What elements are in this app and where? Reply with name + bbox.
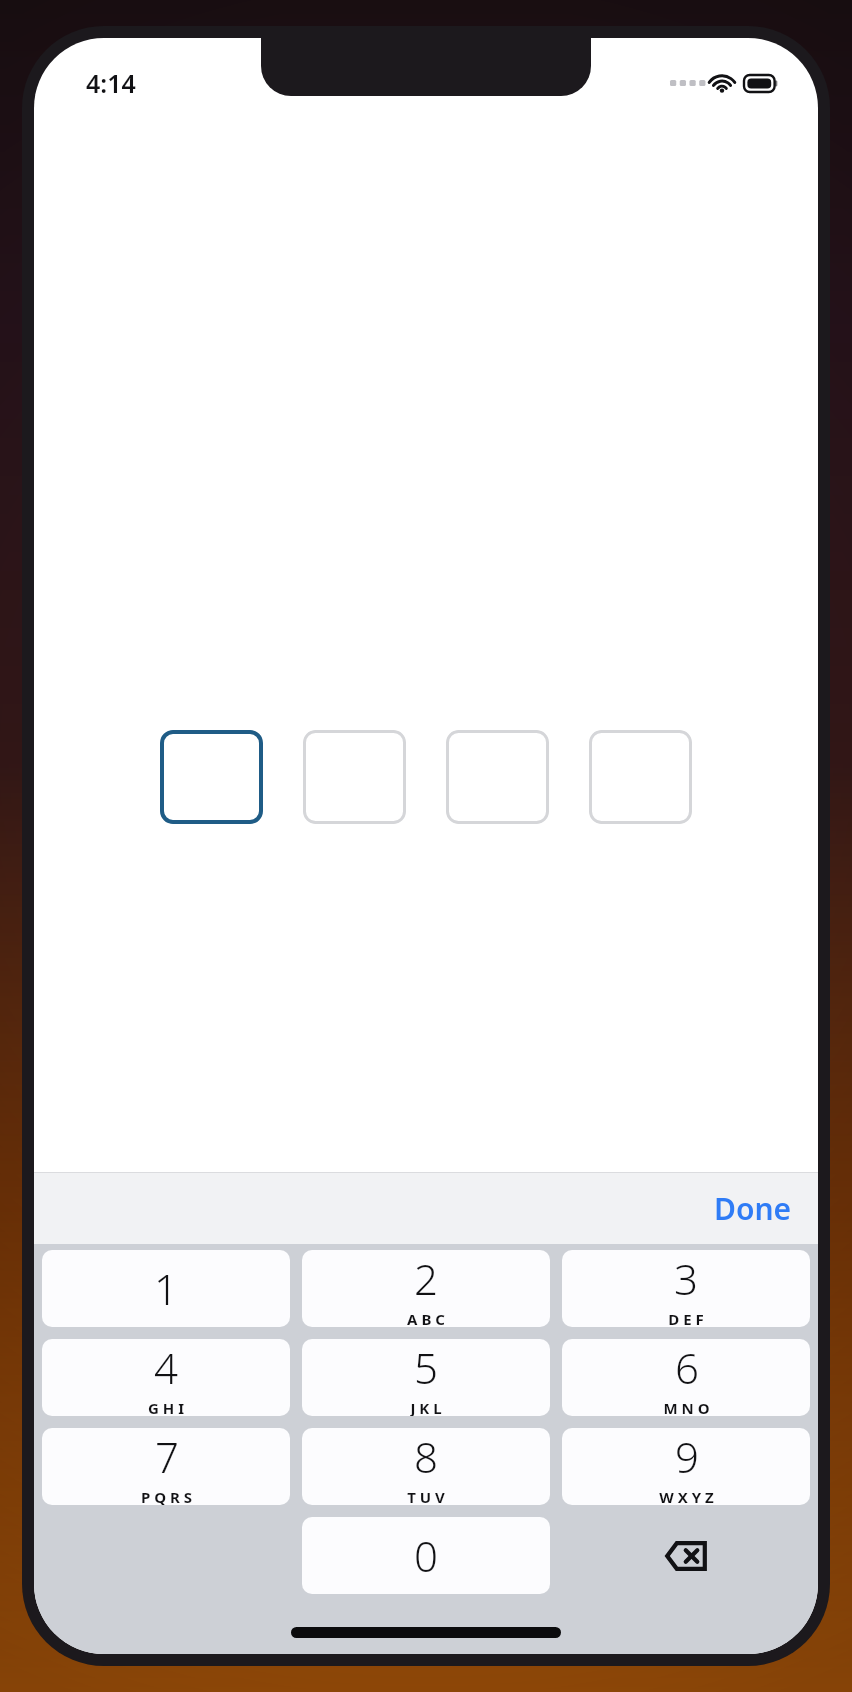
- staticText: P Q R S: [141, 1487, 192, 1505]
- staticText: T U V: [407, 1487, 445, 1505]
- staticText: Done: [714, 1188, 792, 1229]
- button[interactable]: 6: [562, 1339, 810, 1416]
- button[interactable]: 5: [302, 1339, 550, 1416]
- button[interactable]: 4: [42, 1339, 290, 1416]
- staticText: J K L: [410, 1398, 442, 1416]
- staticText: 7: [155, 1428, 179, 1485]
- button[interactable]: Code digit 3: [446, 730, 549, 824]
- staticText: 1: [154, 1260, 178, 1317]
- button[interactable]: 8: [302, 1428, 550, 1505]
- button[interactable]: Code digit 2: [303, 730, 406, 824]
- staticText: 4: [154, 1339, 178, 1396]
- button[interactable]: 1: [42, 1250, 290, 1327]
- button[interactable]: Done: [700, 1180, 806, 1237]
- staticText: A B C: [407, 1309, 445, 1327]
- staticText: D E F: [668, 1309, 704, 1327]
- button[interactable]: 7: [42, 1428, 290, 1505]
- button[interactable]: 9: [562, 1428, 810, 1505]
- staticText: 9: [675, 1428, 699, 1485]
- button[interactable]: 3: [562, 1250, 810, 1327]
- staticText: G H I: [148, 1398, 184, 1416]
- staticText: 3: [674, 1250, 698, 1307]
- staticText: W X Y Z: [659, 1487, 714, 1505]
- button[interactable]: Code digit 4: [589, 730, 692, 824]
- staticText: 8: [414, 1428, 438, 1485]
- button[interactable]: Delete: [562, 1517, 810, 1594]
- staticText: 4:14: [86, 66, 136, 100]
- button[interactable]: 0: [302, 1517, 550, 1594]
- staticText: 5: [414, 1339, 438, 1396]
- button[interactable]: 2: [302, 1250, 550, 1327]
- staticText: 6: [675, 1339, 699, 1396]
- staticText: M N O: [663, 1398, 710, 1416]
- staticText: 2: [414, 1250, 438, 1307]
- staticText: 0: [414, 1527, 438, 1584]
- button[interactable]: Code digit 1: [160, 730, 263, 824]
